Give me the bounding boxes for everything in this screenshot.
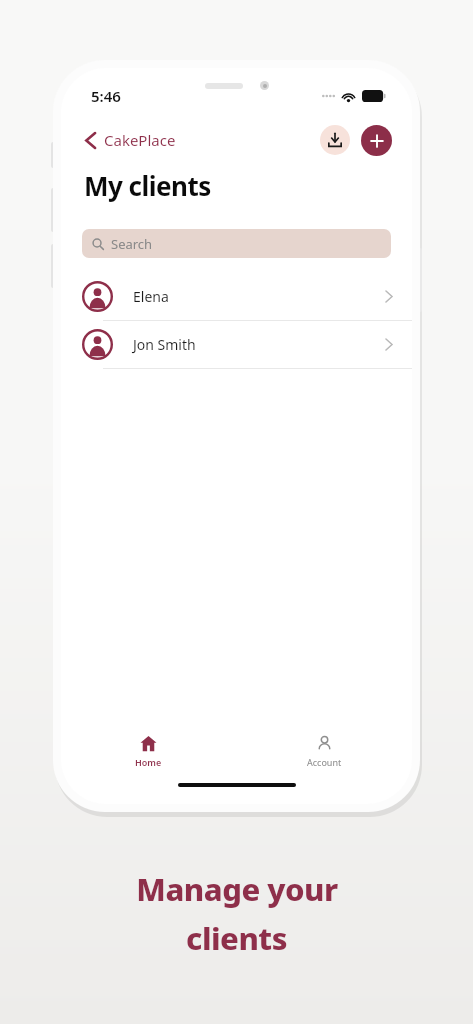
staticText: Jon Smith xyxy=(133,335,196,354)
staticText: Search xyxy=(111,235,153,253)
button[interactable]: Search xyxy=(82,229,391,258)
staticText: Account xyxy=(307,756,342,768)
button[interactable]: Home xyxy=(113,729,184,774)
button[interactable]: Jon Smith xyxy=(61,321,412,368)
staticText: My clients xyxy=(84,168,211,203)
staticText: Home xyxy=(135,756,162,768)
button[interactable]: Add client xyxy=(361,125,392,156)
button[interactable]: Account xyxy=(285,729,364,774)
staticText: clients xyxy=(186,917,287,959)
staticText: 5:46 xyxy=(91,86,121,106)
button[interactable]: Download xyxy=(320,125,350,155)
staticText: CakePlace xyxy=(104,130,176,150)
staticText: Manage your xyxy=(136,868,338,910)
staticText: Elena xyxy=(133,287,169,306)
button[interactable]: Elena xyxy=(61,273,412,320)
button[interactable]: CakePlace xyxy=(83,126,178,154)
